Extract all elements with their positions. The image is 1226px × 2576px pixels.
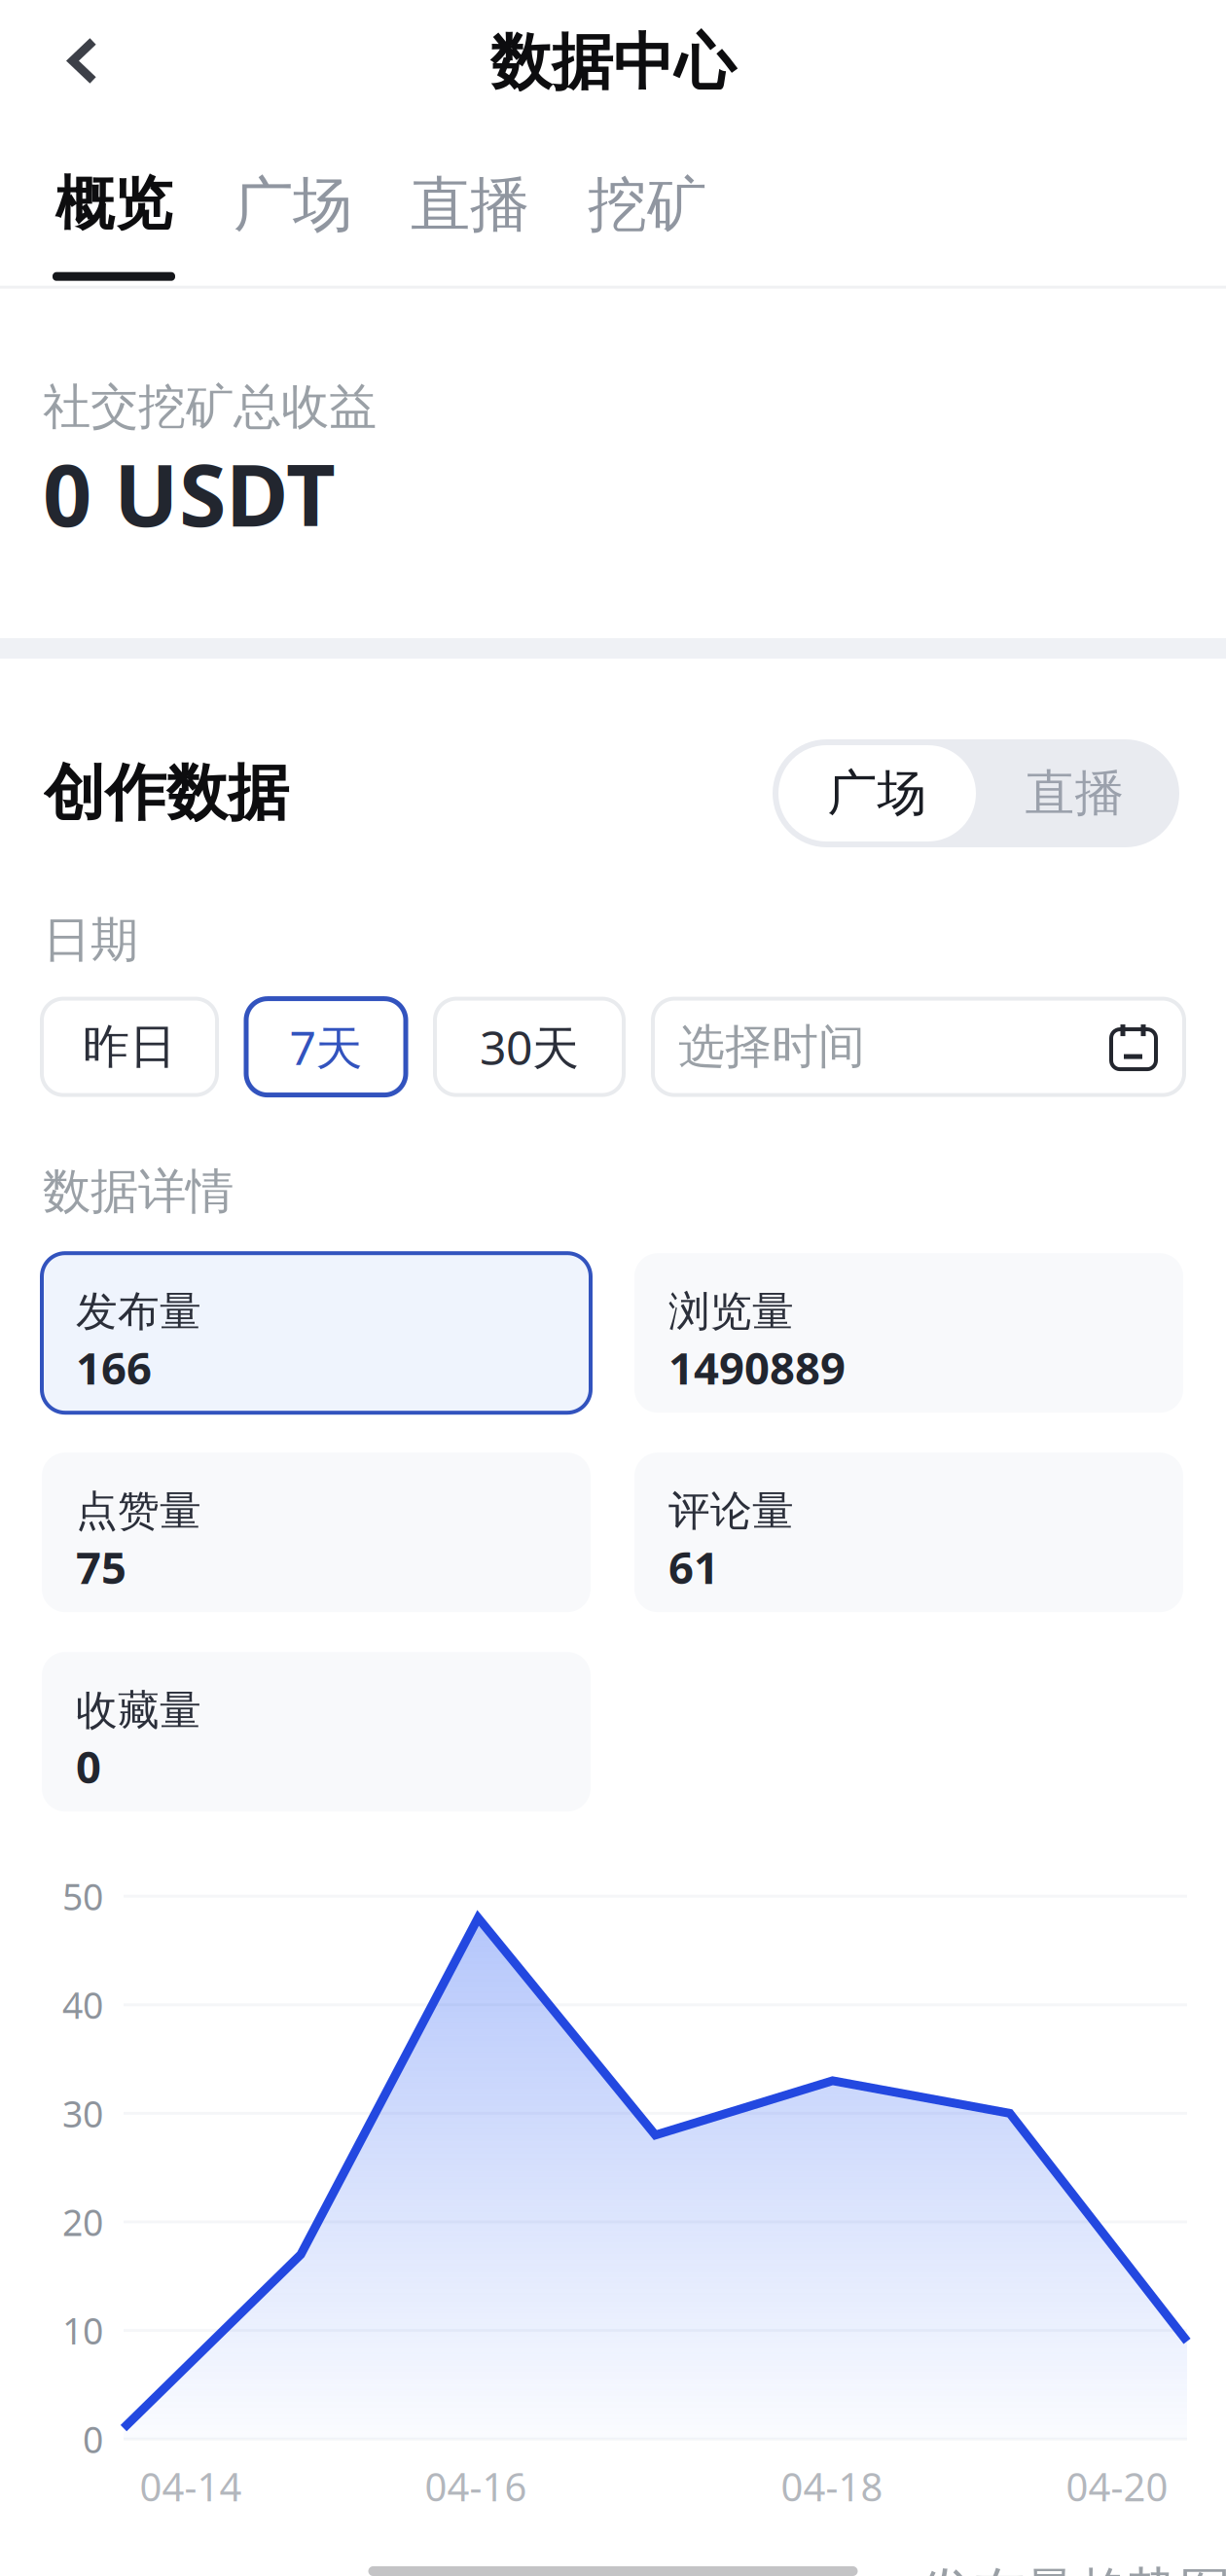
staticText: 数据详情 — [43, 1162, 234, 1221]
staticText: 评论量 — [668, 1486, 794, 1537]
staticText: 04-20 — [1066, 2460, 1168, 2512]
staticText: 点赞量 — [76, 1486, 201, 1537]
button[interactable]: 昨日 — [42, 999, 217, 1095]
staticText: 数据中心 — [490, 25, 736, 100]
staticText: 75 — [76, 1538, 126, 1596]
button[interactable]: 7天 — [246, 999, 406, 1095]
staticText: 10 — [62, 2306, 103, 2355]
button[interactable]: 广场 — [234, 168, 352, 242]
staticText: 昨日 — [83, 1018, 176, 1076]
button[interactable]: Back — [36, 12, 129, 109]
staticText: 0 — [76, 1737, 101, 1796]
button[interactable]: 挖矿 — [588, 168, 706, 242]
button[interactable]: 选择时间 — [653, 999, 1184, 1095]
staticText: 40 — [62, 1981, 103, 2029]
staticText: 概览 — [55, 168, 172, 240]
button[interactable]: 30天 — [435, 999, 624, 1095]
staticText: 7天 — [289, 1016, 362, 1078]
staticText: 20 — [62, 2198, 103, 2246]
staticText: 选择时间 — [678, 1018, 865, 1076]
button[interactable]: 收藏量 — [42, 1652, 591, 1812]
button[interactable]: 点赞量 — [42, 1453, 591, 1612]
staticText: 50 — [62, 1872, 103, 1920]
staticText: 收藏量 — [76, 1685, 201, 1736]
staticText: 1490889 — [668, 1338, 846, 1397]
staticText: 0 — [83, 2415, 103, 2463]
staticText: 04-16 — [425, 2460, 527, 2512]
staticText: 0 USDT — [43, 436, 336, 550]
button[interactable]: 评论量 — [634, 1453, 1183, 1612]
staticText: 61 — [668, 1538, 719, 1596]
staticText: 直播 — [1025, 763, 1124, 824]
staticText: 04-14 — [140, 2460, 242, 2512]
button[interactable]: 直播 — [976, 745, 1173, 841]
staticText: 挖矿 — [588, 168, 706, 242]
staticText: 30天 — [480, 1016, 579, 1078]
staticText: 创作数据 — [44, 756, 289, 831]
button[interactable]: 发布量 — [42, 1253, 591, 1413]
staticText: 浏览量 — [668, 1286, 794, 1337]
staticText: 发布量趋势图 — [921, 2560, 1226, 2576]
staticText: 166 — [76, 1338, 152, 1397]
staticText: 直播 — [411, 168, 529, 242]
button[interactable]: 概览 — [55, 168, 172, 240]
staticText: 社交挖矿总收益 — [43, 377, 377, 436]
staticText: 广场 — [828, 763, 927, 824]
button[interactable]: 直播 — [411, 168, 529, 242]
button[interactable]: 广场 — [778, 745, 976, 841]
staticText: 发布量 — [76, 1286, 201, 1337]
staticText: 广场 — [234, 168, 352, 242]
staticText: 04-18 — [781, 2460, 883, 2512]
staticText: 日期 — [43, 911, 138, 970]
staticText: 30 — [62, 2089, 103, 2137]
button[interactable]: 浏览量 — [634, 1253, 1183, 1413]
